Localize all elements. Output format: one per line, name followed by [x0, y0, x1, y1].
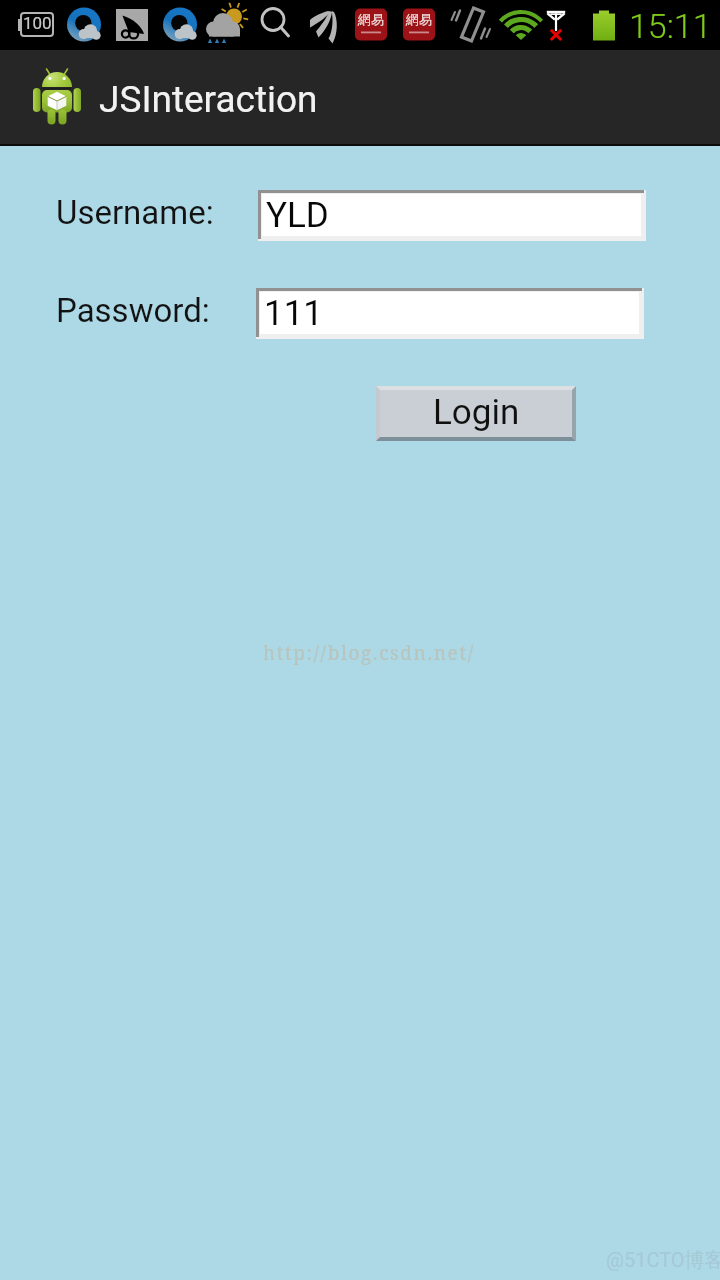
staticText: 15:11 [629, 6, 712, 46]
button[interactable]: Battery full [582, 0, 626, 50]
staticText: Login [433, 392, 520, 433]
staticText: 網易 [406, 11, 432, 27]
button[interactable]: No mobile signal [542, 0, 576, 50]
button[interactable]: JSInteraction [0, 50, 330, 146]
staticText: 111 [264, 293, 324, 334]
button[interactable]: Baby tracker notification [102, 0, 148, 50]
staticText: JSInteraction [99, 78, 318, 121]
button[interactable]: Vibrate mode [448, 0, 496, 50]
button[interactable]: Weather: cloudy with rain [204, 0, 248, 50]
button[interactable]: NetEase News notification [350, 0, 394, 50]
button[interactable]: Login [376, 386, 579, 443]
button[interactable]: Wi-Fi connected [496, 0, 542, 50]
button[interactable]: NetEase News notification [398, 0, 442, 50]
staticText: 100 [23, 13, 52, 33]
staticText: Password: [56, 291, 210, 330]
button[interactable]: Battery percentage 100 [0, 0, 66, 50]
button[interactable]: YLD [258, 190, 646, 241]
button[interactable]: 111 [256, 288, 644, 339]
button[interactable]: QQ Browser notification [66, 0, 102, 50]
button[interactable]: Search [256, 0, 298, 50]
staticText: YLD [266, 195, 329, 236]
button[interactable]: Music notification [300, 0, 346, 50]
button[interactable]: QQ Browser notification [148, 0, 184, 50]
button[interactable]: Clock 15:11 [626, 0, 710, 50]
staticText: @51CTO博客 [606, 1248, 720, 1273]
staticText: 網易 [358, 11, 384, 27]
staticText: http://blog.csdn.net/ [263, 640, 475, 666]
staticText: Username: [56, 193, 214, 232]
